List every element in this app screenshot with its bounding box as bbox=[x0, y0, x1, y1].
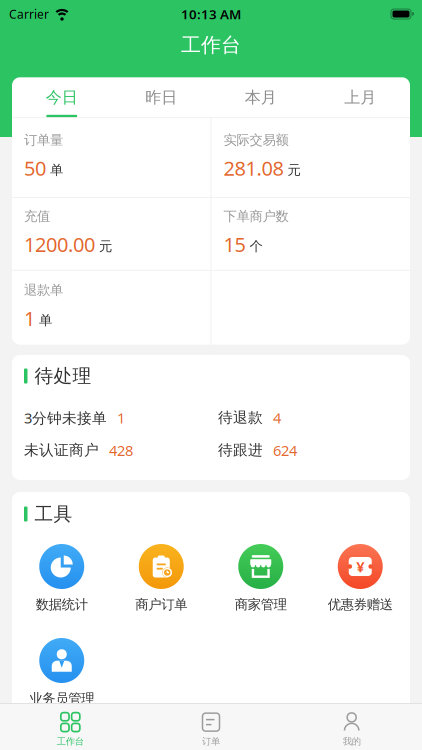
staticText: 10:13 AM bbox=[181, 5, 241, 23]
staticText: 充值 bbox=[24, 208, 50, 225]
button[interactable]: 昨日 bbox=[111, 77, 211, 117]
button[interactable]: 上月 bbox=[310, 77, 410, 117]
staticText: 订单量 bbox=[24, 132, 63, 148]
button[interactable]: 待退款 bbox=[218, 408, 281, 427]
staticText: 1 bbox=[24, 305, 35, 331]
staticText: 工具 bbox=[34, 502, 72, 525]
staticText: 订单 bbox=[202, 736, 220, 747]
staticText: 428 bbox=[109, 440, 133, 460]
staticText: 今日 bbox=[46, 87, 78, 107]
button[interactable]: 今日 bbox=[12, 77, 111, 117]
staticText: Carrier bbox=[9, 6, 49, 22]
staticText: 624 bbox=[273, 440, 297, 460]
staticText: 本月 bbox=[245, 87, 277, 107]
button[interactable]: 数据统计 bbox=[12, 544, 111, 612]
staticText: 昨日 bbox=[145, 87, 177, 107]
staticText: 4 bbox=[273, 408, 281, 427]
button[interactable]: 本月 bbox=[211, 77, 310, 117]
button[interactable]: 未认证商户 bbox=[24, 440, 133, 460]
staticText: 下单商户数 bbox=[223, 208, 288, 225]
staticText: 1200.00 bbox=[24, 231, 95, 258]
staticText: ¥ bbox=[356, 557, 364, 576]
staticText: 15 bbox=[223, 231, 245, 258]
staticText: 待跟进 bbox=[218, 441, 263, 459]
staticText: 50 bbox=[24, 155, 46, 181]
staticText: 元 bbox=[287, 162, 300, 178]
staticText: 工作台 bbox=[181, 33, 241, 57]
staticText: 3分钟未接单 bbox=[24, 408, 107, 427]
staticText: 退款单 bbox=[24, 282, 63, 298]
staticText: 未认证商户 bbox=[24, 441, 99, 459]
staticText: 元 bbox=[99, 238, 112, 255]
staticText: 商家管理 bbox=[235, 596, 287, 613]
staticText: 单 bbox=[39, 312, 52, 328]
button[interactable]: 工作台 bbox=[0, 707, 141, 747]
staticText: 上月 bbox=[344, 87, 376, 107]
button[interactable]: 商户订单 bbox=[111, 544, 211, 612]
button[interactable]: 3分钟未接单 bbox=[24, 408, 125, 427]
staticText: 数据统计 bbox=[36, 596, 88, 613]
staticText: 1 bbox=[117, 408, 125, 427]
button[interactable]: 我的 bbox=[281, 707, 422, 747]
button[interactable]: 商家管理 bbox=[211, 544, 310, 612]
staticText: 待退款 bbox=[218, 409, 263, 427]
staticText: 我的 bbox=[343, 736, 361, 747]
staticText: 单 bbox=[50, 162, 63, 178]
staticText: 商户订单 bbox=[135, 596, 187, 613]
staticText: 待处理 bbox=[34, 364, 91, 387]
staticText: 个 bbox=[249, 238, 262, 255]
staticText: 实际交易额 bbox=[223, 132, 288, 148]
staticText: 优惠券赠送 bbox=[328, 596, 393, 613]
staticText: 业务员管理 bbox=[29, 690, 94, 707]
button[interactable]: 业务员管理 bbox=[12, 638, 111, 706]
button[interactable]: ¥ bbox=[310, 544, 410, 612]
button[interactable]: 待跟进 bbox=[218, 440, 297, 460]
button[interactable]: 订单 bbox=[141, 707, 281, 747]
staticText: 工作台 bbox=[57, 736, 84, 747]
staticText: 281.08 bbox=[223, 155, 283, 181]
